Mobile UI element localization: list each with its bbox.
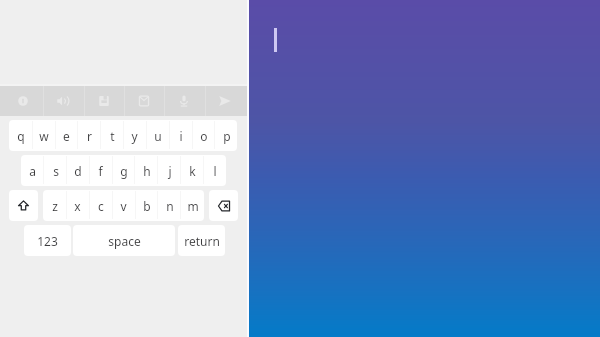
button[interactable]: j [158,155,181,186]
button[interactable]: Backspace [209,190,238,221]
button[interactable]: e [55,120,78,151]
button[interactable]: m [181,190,204,221]
button[interactable]: 123 [24,225,71,256]
staticText: m [187,198,199,214]
staticText: n [166,198,174,214]
staticText: s [53,163,59,179]
button[interactable]: i [169,120,192,151]
staticText: w [39,128,49,144]
button[interactable]: o [192,120,215,151]
button[interactable]: b [135,190,158,221]
button[interactable]: Info [3,86,43,116]
button[interactable]: k [181,155,204,186]
staticText: q [17,128,25,144]
button[interactable]: f [89,155,112,186]
staticText: z [52,198,58,214]
button[interactable]: return [178,225,225,256]
button[interactable]: Save [84,86,124,116]
button[interactable]: c [89,190,112,221]
staticText: return [184,233,220,249]
button[interactable]: Paste [124,86,164,116]
staticText: b [143,198,151,214]
button[interactable]: a [21,155,44,186]
staticText: u [154,128,162,144]
button[interactable]: u [146,120,169,151]
staticText: p [223,128,231,144]
button[interactable]: Shift [9,190,38,221]
staticText: v [120,198,127,214]
staticText: o [200,128,208,144]
button[interactable]: z [43,190,66,221]
staticText: e [63,128,70,144]
staticText: f [98,163,103,179]
button[interactable]: l [203,155,226,186]
button[interactable]: g [112,155,135,186]
staticText: t [110,128,115,144]
staticText: g [120,163,128,179]
staticText: i [179,128,183,144]
staticText: j [168,163,172,179]
button[interactable]: d [66,155,89,186]
button[interactable]: x [66,190,89,221]
button[interactable]: r [78,120,101,151]
button[interactable]: t [101,120,124,151]
staticText: 123 [37,233,58,249]
button[interactable]: space [73,225,175,256]
staticText: k [189,163,196,179]
staticText: a [29,163,36,179]
staticText: d [74,163,82,179]
button[interactable]: w [32,120,55,151]
button[interactable]: y [123,120,146,151]
staticText: y [131,128,138,144]
staticText: l [213,163,217,179]
staticText: c [98,198,104,214]
staticText: r [87,128,92,144]
button[interactable]: p [215,120,238,151]
button[interactable]: s [44,155,67,186]
button[interactable]: Send [205,86,245,116]
staticText: x [74,198,81,214]
button[interactable]: n [158,190,181,221]
staticText: space [108,233,141,249]
button[interactable]: h [135,155,158,186]
button[interactable]: v [112,190,135,221]
button[interactable]: q [9,120,32,151]
staticText: h [143,163,151,179]
